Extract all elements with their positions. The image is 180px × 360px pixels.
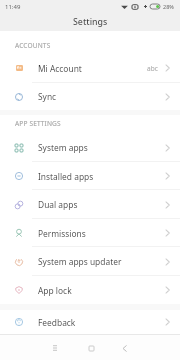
staticText: Sync (38, 91, 57, 102)
button[interactable]: Permissions (0, 219, 180, 247)
staticText: ACCOUNTS (15, 41, 51, 50)
staticText: Mi Account (38, 63, 82, 74)
staticText: Dual apps (38, 199, 78, 210)
staticText: abc (147, 64, 158, 73)
staticText: System apps (38, 142, 88, 153)
button[interactable]: Back (121, 341, 127, 355)
button[interactable]: Home (88, 341, 94, 355)
button[interactable]: System apps (0, 133, 180, 162)
button[interactable]: Feedback (0, 310, 180, 334)
button[interactable]: Mi Account (0, 53, 180, 83)
staticText: 28% (163, 3, 174, 10)
staticText: Permissions (38, 228, 86, 239)
staticText: APP SETTINGS (15, 119, 61, 128)
button[interactable]: Installed apps (0, 162, 180, 190)
staticText: Installed apps (38, 171, 94, 182)
staticText: App lock (38, 285, 72, 296)
button[interactable]: System apps updater (0, 247, 180, 276)
button[interactable]: Dual apps (0, 190, 180, 219)
button[interactable]: App lock (0, 276, 180, 304)
button[interactable]: Sync (0, 83, 180, 110)
staticText: System apps updater (38, 256, 122, 267)
staticText: 11:49 (5, 3, 21, 11)
staticText: Settings (73, 16, 108, 28)
button[interactable]: Recents (52, 341, 58, 355)
staticText: Feedback (38, 317, 76, 328)
